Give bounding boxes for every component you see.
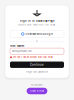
staticText: No account? — [31, 83, 43, 86]
staticText: Start a Trial — [30, 89, 44, 92]
button[interactable]: Continue — [10, 61, 64, 68]
staticText: Sign in to DataSnapPage — [20, 19, 54, 22]
staticText: Continue with Google — [25, 32, 52, 36]
staticText: Email address — [10, 44, 24, 47]
staticText: We can't find an account with that email… — [13, 56, 53, 58]
button[interactable]: Forgot your password? — [26, 70, 48, 73]
button[interactable]: Start a Trial — [27, 88, 47, 94]
staticText: Forgot your password? — [26, 70, 48, 73]
staticText: name@company.com — [12, 50, 32, 53]
staticText: Continue — [30, 63, 44, 66]
staticText: Welcome back! Please enter your details. — [18, 24, 56, 26]
button[interactable]: Continue with Google — [10, 30, 64, 37]
staticText: or — [36, 40, 38, 43]
